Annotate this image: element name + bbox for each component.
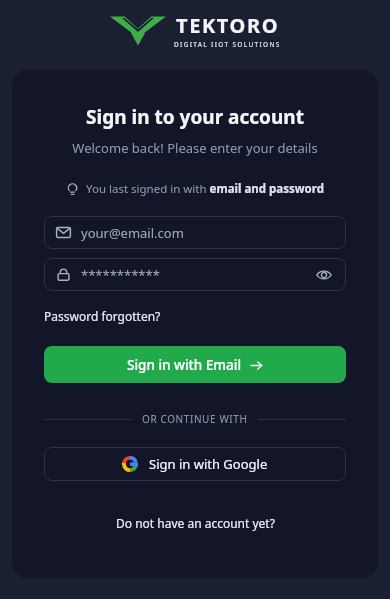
staticText: Sign in with Google (149, 455, 268, 473)
staticText: Sign in to your account (86, 104, 304, 130)
staticText: TEKTORO (176, 12, 280, 39)
staticText: Password forgotten? (44, 308, 161, 324)
staticText: You last signed in with email and passwo… (86, 181, 324, 197)
button[interactable]: Password forgotten? (44, 306, 161, 326)
button[interactable]: Sign in with Google (44, 447, 346, 481)
staticText: Welcome back! Please enter your details (72, 139, 318, 157)
staticText: OR CONTINUE WITH (142, 412, 248, 426)
staticText: *********** (81, 266, 160, 284)
staticText: your@email.com (81, 224, 184, 242)
staticText: DIGITAL IIOT SOLUTIONS (174, 40, 281, 49)
staticText: Sign in with Email (127, 356, 242, 374)
staticText: Do not have an account yet? (116, 515, 275, 531)
button[interactable]: Email address (44, 216, 346, 249)
button[interactable]: Sign in with Email (44, 346, 346, 383)
button[interactable]: Do not have an account yet? (112, 513, 279, 533)
button[interactable]: Password (44, 258, 346, 291)
button[interactable]: Show password (314, 265, 334, 285)
